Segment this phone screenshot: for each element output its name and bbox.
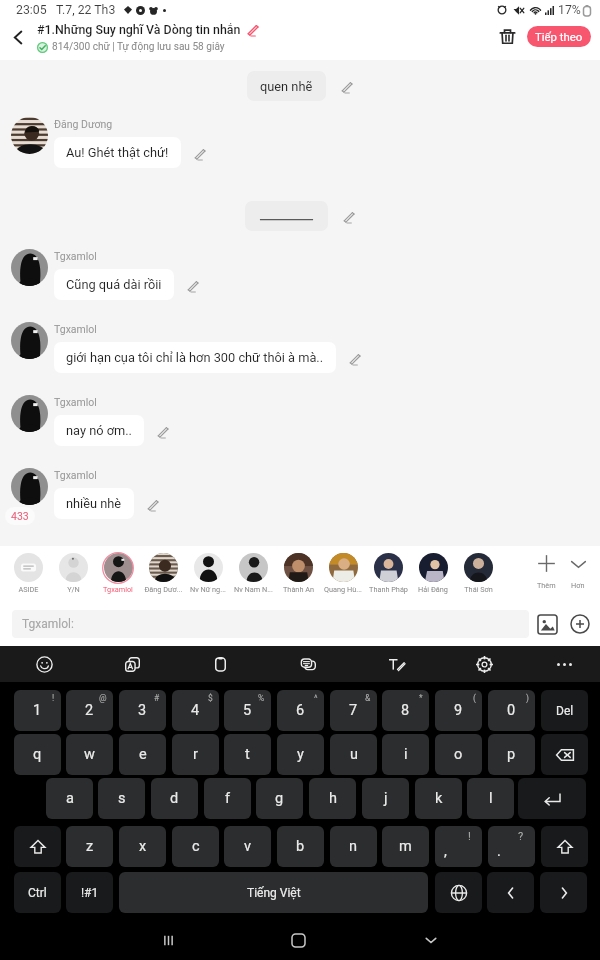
button[interactable]: 8 [382,690,429,731]
button[interactable]: r [172,734,219,775]
button[interactable]: Tiếp theo [527,26,591,47]
button[interactable]: u [330,734,377,775]
button[interactable]: k [415,778,462,819]
button[interactable]: nay nó ơm.. [54,415,144,446]
button[interactable]: Previous [487,872,534,913]
button[interactable]: y [277,734,324,775]
button[interactable]: 5 [224,690,271,731]
button[interactable]: z [66,826,113,867]
button[interactable]: w [66,734,113,775]
button[interactable]: ASIDE [6,546,50,600]
button[interactable]: nhiều nhè [54,488,134,519]
button[interactable]: Au! Ghét thật chứ! [54,137,181,168]
button[interactable]: a [46,778,93,819]
button[interactable]: t [224,734,271,775]
button[interactable]: Avatar [11,322,48,359]
button[interactable]: Add [568,612,592,636]
button[interactable]: q [14,734,61,775]
button[interactable]: g [256,778,303,819]
button[interactable]: Recents [150,922,186,958]
button[interactable]: Shift [14,826,61,867]
button[interactable]: n [330,826,377,867]
button[interactable]: Nv Nữ ng... [186,546,230,600]
button[interactable]: 7 [330,690,377,731]
button[interactable]: Avatar [11,249,48,286]
button[interactable]: Thái Sơn [456,546,500,600]
button[interactable]: Avatar [11,117,48,154]
button[interactable]: Next [540,872,587,913]
button[interactable]: 0 [488,690,535,731]
button[interactable]: Home [280,922,316,958]
button[interactable]: 6 [277,690,324,731]
button[interactable]: quen nhẽ [247,71,326,101]
button[interactable]: giới hạn cụa tôi chỉ là hơn 300 chữ thôi… [54,342,336,373]
button[interactable]: Backspace [541,734,588,775]
button[interactable]: Language [435,872,482,913]
button[interactable]: Clipboard [205,649,235,679]
staticText: 433 [11,510,29,522]
button[interactable]: Thanh Pháp [366,546,410,600]
button[interactable]: Edit message [340,208,356,224]
button[interactable]: Avatar [11,395,48,432]
button[interactable]: Text [293,649,323,679]
button[interactable]: Shift [541,826,588,867]
button[interactable]: Edit message [144,496,160,512]
button[interactable]: Hơn [558,554,598,590]
button[interactable]: 433 [5,507,35,525]
button[interactable]: h [309,778,356,819]
button[interactable]: o [435,734,482,775]
button[interactable]: Avatar [11,468,48,505]
button[interactable]: Đăng Dươ... [141,546,185,600]
button[interactable]: c [172,826,219,867]
button[interactable]: f [204,778,251,819]
button[interactable]: 9 [435,690,482,731]
button[interactable]: Settings [469,649,499,679]
button[interactable]: Del [541,690,588,731]
button[interactable]: More options [549,649,579,679]
button[interactable]: Edit message [338,78,354,94]
button[interactable]: Enter [518,778,586,819]
button[interactable]: Back [0,20,35,55]
button[interactable]: . [488,826,535,867]
button[interactable]: Hải Đăng [411,546,455,600]
button[interactable]: l [467,778,514,819]
button[interactable]: Y/N [51,546,95,600]
button[interactable]: Thành An [276,546,320,600]
button[interactable]: i [382,734,429,775]
button[interactable]: Tgxamlol [96,546,140,600]
button[interactable] [245,201,328,231]
button[interactable]: e [119,734,166,775]
button[interactable]: Thêm [526,554,566,590]
button[interactable]: m [382,826,429,867]
button[interactable]: p [488,734,535,775]
button[interactable]: !#1 [66,872,113,913]
button[interactable]: 3 [119,690,166,731]
button[interactable]: , [435,826,482,867]
button[interactable]: d [151,778,198,819]
button[interactable]: Edit message [191,145,207,161]
button[interactable]: Handwriting [381,649,411,679]
button[interactable]: Edit message [154,423,170,439]
button[interactable]: Back [413,922,449,958]
button[interactable]: Ctrl [14,872,61,913]
button[interactable]: Cũng quá dài rồii [54,269,174,300]
button[interactable]: Emoji [29,649,59,679]
button[interactable]: Nv Nam N... [231,546,275,600]
button[interactable]: Edit message [346,350,362,366]
button[interactable]: Edit message [184,277,200,293]
button[interactable]: 1 [14,690,61,731]
button[interactable]: Stickers [117,649,147,679]
button[interactable]: Delete [493,22,521,50]
button[interactable]: Quang Hù... [321,546,365,600]
button[interactable]: Tiếng Việt [119,872,428,913]
staticText: Hơn [571,581,585,590]
button[interactable]: Add image [535,612,559,636]
button[interactable]: Tgxamlol: [12,610,529,638]
button[interactable]: 2 [66,690,113,731]
button[interactable]: 4 [172,690,219,731]
button[interactable]: v [224,826,271,867]
button[interactable]: s [98,778,145,819]
button[interactable]: x [119,826,166,867]
button[interactable]: b [277,826,324,867]
button[interactable]: j [362,778,409,819]
